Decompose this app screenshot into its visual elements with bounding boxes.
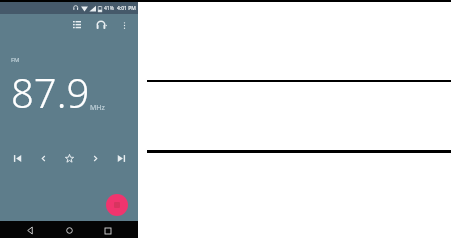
button[interactable]: Seek up (86, 149, 104, 167)
button[interactable]: Headset output (92, 16, 110, 34)
button[interactable]: Next station (112, 149, 130, 167)
staticText: 87.9 (11, 65, 90, 119)
staticText: FM (11, 56, 20, 64)
button[interactable]: More options (115, 16, 133, 34)
button[interactable]: Previous station (8, 149, 26, 167)
button[interactable]: Recent apps (99, 222, 116, 238)
staticText: 4:01 PM (117, 5, 136, 12)
button[interactable]: Station list (68, 16, 86, 34)
button[interactable]: Seek down (34, 149, 52, 167)
button[interactable]: Favourite (60, 149, 78, 167)
button[interactable]: Home (61, 222, 78, 238)
staticText: 41% (104, 5, 114, 12)
button[interactable]: Back (22, 222, 39, 238)
button[interactable]: Stop radio (106, 194, 128, 216)
staticText: MHz (90, 103, 105, 113)
